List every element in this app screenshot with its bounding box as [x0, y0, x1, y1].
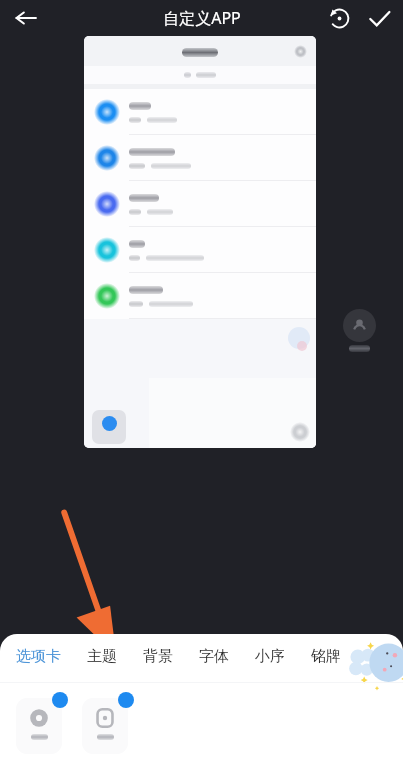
staticText: 选项卡: [16, 647, 61, 666]
button[interactable]: Reset: [319, 0, 359, 36]
button[interactable]: Help: [341, 309, 377, 357]
button[interactable]: [84, 273, 316, 319]
button[interactable]: [84, 135, 316, 181]
button[interactable]: [82, 692, 134, 754]
button[interactable]: [84, 181, 316, 227]
button[interactable]: 字体: [199, 647, 229, 666]
staticText: 小序: [255, 647, 285, 666]
button[interactable]: 主题: [87, 647, 117, 666]
button[interactable]: 铭牌: [311, 647, 341, 666]
button[interactable]: Confirm: [359, 0, 399, 36]
button[interactable]: [84, 89, 316, 135]
button[interactable]: [16, 692, 68, 754]
button[interactable]: [92, 410, 126, 444]
staticText: 字体: [199, 647, 229, 666]
button[interactable]: 小序: [255, 647, 285, 666]
staticText: 铭牌: [311, 647, 341, 666]
button[interactable]: 选项卡: [16, 647, 61, 666]
button[interactable]: Back: [6, 0, 46, 36]
staticText: 背景: [143, 647, 173, 666]
button[interactable]: 背景: [143, 647, 173, 666]
button[interactable]: [84, 227, 316, 273]
staticText: 主题: [87, 647, 117, 666]
staticText: 自定义APP: [163, 7, 241, 29]
